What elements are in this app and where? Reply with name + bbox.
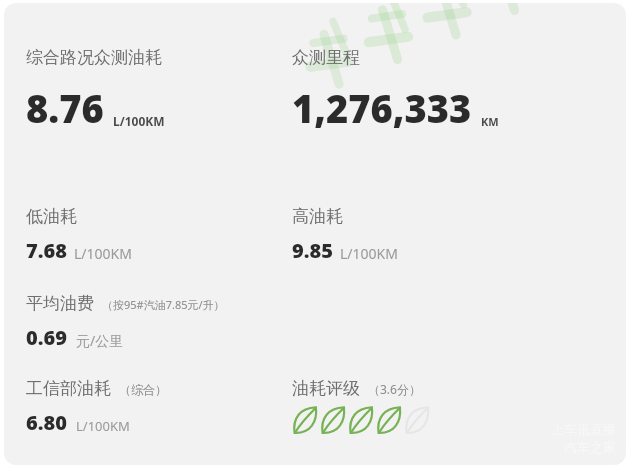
staticText: 平均油费 (26, 293, 94, 314)
staticText: （按95#汽油7.85元/升） (102, 297, 225, 312)
staticText: 综合路况众测油耗 (26, 47, 162, 68)
staticText: （综合） (119, 382, 167, 397)
staticText: 1,276,333 (292, 82, 472, 134)
staticText: 7.68 (26, 237, 67, 264)
staticText: （3.6分） (368, 381, 421, 397)
staticText: 高油耗 (292, 206, 343, 227)
staticText: 6.80 (26, 409, 67, 436)
staticText: L/100KM (340, 244, 398, 263)
staticText: L/100KM (113, 113, 165, 129)
staticText: 众测里程 (292, 47, 360, 68)
staticText: KM (481, 114, 499, 129)
staticText: 油耗评级 (292, 378, 360, 399)
staticText: 低油耗 (26, 206, 77, 227)
button[interactable]: 上车讯直播 (4, 3, 626, 465)
staticText: L/100KM (74, 244, 132, 263)
staticText: 0.69 (26, 324, 67, 351)
staticText: 元/公里 (76, 331, 124, 350)
staticText: 8.76 (26, 82, 104, 134)
staticText: 9.85 (292, 237, 333, 264)
button[interactable]: 油耗评级 3.6 分，共 5 片叶 (292, 405, 430, 435)
staticText: L/100KM (76, 417, 130, 435)
staticText: 工信部油耗 (26, 378, 111, 399)
